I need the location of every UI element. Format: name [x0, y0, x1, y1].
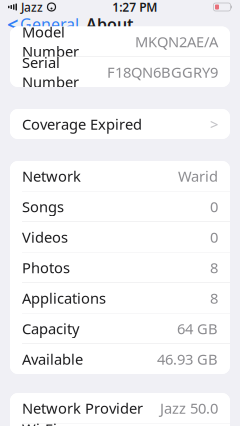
- staticText: Wi-Fi Address: [22, 419, 77, 426]
- staticText: Network: [22, 166, 81, 186]
- button[interactable]: Photos: [10, 252, 230, 282]
- staticText: Coverage Expired: [22, 114, 142, 134]
- button[interactable]: Network Provider: [10, 393, 230, 423]
- staticText: Applications: [22, 288, 106, 308]
- button[interactable]: Network: [10, 161, 230, 191]
- staticText: 8: [210, 288, 218, 308]
- staticText: Network Provider: [22, 398, 143, 418]
- button[interactable]: Capacity: [10, 313, 230, 343]
- button[interactable]: Videos: [10, 222, 230, 252]
- staticText: Jazz 50.0: [160, 398, 218, 418]
- staticText: Available: [22, 349, 83, 369]
- staticText: About: [86, 13, 133, 35]
- button[interactable]: Coverage Expired: [10, 109, 230, 139]
- button[interactable]: Songs: [10, 191, 230, 221]
- staticText: Photos: [22, 258, 70, 277]
- button[interactable]: Serial Number: [10, 57, 230, 87]
- staticText: General: [20, 13, 79, 35]
- staticText: 8: [210, 258, 218, 277]
- button[interactable]: Model Number: [10, 26, 230, 56]
- staticText: Model Number: [22, 22, 79, 61]
- button[interactable]: Applications: [10, 283, 230, 313]
- staticText: <: [7, 11, 18, 37]
- staticText: Warid: [178, 166, 218, 186]
- button[interactable]: Wi-Fi Address: [10, 423, 230, 426]
- staticText: Jazz: [21, 0, 43, 15]
- staticText: Songs: [22, 197, 64, 216]
- button[interactable]: Available: [10, 344, 230, 374]
- staticText: F18QN6BGGRY9: [107, 62, 218, 82]
- staticText: 1:27 PM: [112, 0, 157, 15]
- button[interactable]: <: [0, 8, 79, 40]
- staticText: Capacity: [22, 319, 79, 338]
- staticText: 64 GB: [177, 319, 218, 338]
- staticText: Serial Number: [22, 52, 79, 91]
- staticText: Videos: [22, 227, 68, 247]
- staticText: 0: [210, 197, 218, 216]
- staticText: 0: [210, 227, 218, 247]
- staticText: >: [210, 114, 218, 134]
- staticText: MKQN2AE/A: [135, 32, 218, 51]
- staticText: 46.93 GB: [157, 349, 218, 369]
